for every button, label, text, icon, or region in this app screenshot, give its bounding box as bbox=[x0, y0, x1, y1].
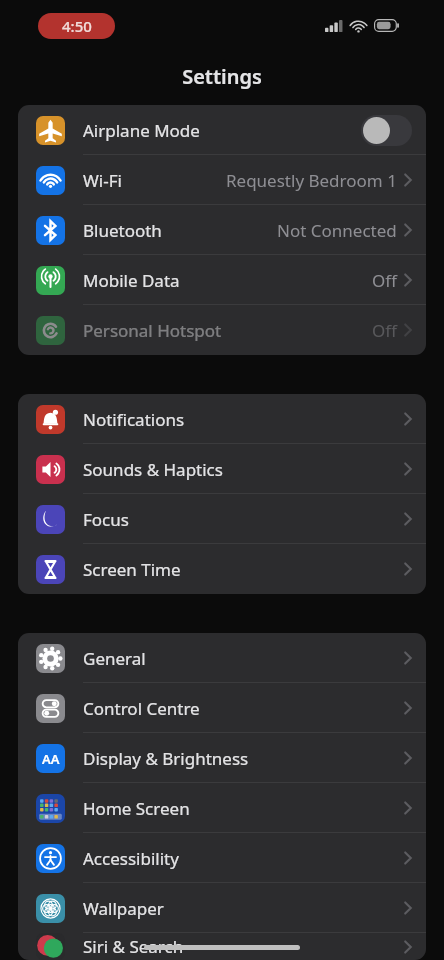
button[interactable]: Control Centre bbox=[18, 683, 426, 733]
staticText: General bbox=[83, 647, 146, 670]
staticText: 4:50 bbox=[62, 16, 92, 36]
staticText: Display & Brightness bbox=[83, 747, 249, 770]
button[interactable]: Focus bbox=[18, 494, 426, 544]
button[interactable]: Bluetooth bbox=[18, 205, 426, 255]
button[interactable]: Mobile Data bbox=[18, 255, 426, 305]
staticText: Home Screen bbox=[83, 797, 190, 820]
staticText: Off bbox=[372, 269, 397, 292]
button[interactable]: Sounds & Haptics bbox=[18, 444, 426, 494]
button[interactable]: Accessibility bbox=[18, 833, 426, 883]
button[interactable]: Personal Hotspot bbox=[18, 305, 426, 355]
button[interactable]: Home Screen bbox=[18, 783, 426, 833]
staticText: Settings bbox=[182, 63, 262, 90]
staticText: Accessibility bbox=[83, 847, 179, 870]
staticText: Siri & Search bbox=[83, 935, 184, 958]
staticText: Notifications bbox=[83, 408, 185, 431]
button[interactable]: Wallpaper bbox=[18, 883, 426, 933]
button[interactable]: Notifications bbox=[18, 394, 426, 444]
button[interactable]: AA bbox=[18, 733, 426, 783]
button[interactable]: Airplane Mode toggle bbox=[361, 115, 412, 146]
button[interactable]: Siri & Search bbox=[18, 933, 426, 960]
staticText: Focus bbox=[83, 508, 129, 531]
staticText: Requestly Bedroom 1 bbox=[226, 169, 397, 192]
staticText: Off bbox=[372, 319, 397, 342]
staticText: Personal Hotspot bbox=[83, 319, 222, 342]
button[interactable]: Screen Time bbox=[18, 544, 426, 594]
staticText: Sounds & Haptics bbox=[83, 458, 223, 481]
staticText: Bluetooth bbox=[83, 219, 162, 242]
button[interactable]: General bbox=[18, 633, 426, 683]
staticText: Not Connected bbox=[277, 219, 397, 242]
button[interactable]: Wi-Fi bbox=[18, 155, 426, 205]
staticText: Wallpaper bbox=[83, 897, 164, 920]
staticText: Control Centre bbox=[83, 697, 200, 720]
staticText: AA bbox=[42, 750, 60, 768]
button[interactable]: Airplane Mode bbox=[18, 105, 426, 155]
staticText: Screen Time bbox=[83, 558, 181, 581]
staticText: Wi-Fi bbox=[83, 169, 122, 192]
staticText: Mobile Data bbox=[83, 269, 180, 292]
staticText: Airplane Mode bbox=[83, 119, 200, 142]
